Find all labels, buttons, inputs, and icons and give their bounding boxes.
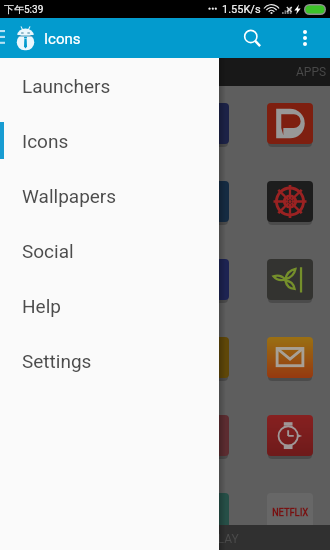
button[interactable]: More options bbox=[291, 18, 319, 58]
staticText: Help bbox=[22, 295, 61, 317]
button[interactable]: Social bbox=[0, 223, 219, 278]
staticText: Icons bbox=[22, 130, 69, 152]
button[interactable]: Open navigation drawer bbox=[0, 18, 18, 58]
staticText: Icons bbox=[44, 30, 81, 48]
button[interactable]: Icons bbox=[0, 113, 219, 168]
button[interactable]: Launchers bbox=[0, 58, 219, 113]
staticText: NETFLIX bbox=[272, 506, 309, 519]
staticText: Launchers bbox=[22, 75, 111, 97]
button[interactable]: Help bbox=[0, 278, 219, 333]
staticText: Wallpapers bbox=[22, 185, 117, 207]
staticText: ··· bbox=[208, 2, 218, 16]
staticText: Social bbox=[22, 240, 74, 262]
button[interactable]: Settings bbox=[0, 333, 219, 388]
staticText: 1.55K/s bbox=[222, 3, 261, 16]
staticText: APPS bbox=[296, 65, 327, 79]
staticText: PLAY bbox=[210, 532, 239, 546]
button[interactable]: Search bbox=[236, 18, 268, 58]
button[interactable]: Wallpapers bbox=[0, 168, 219, 223]
staticText: Settings bbox=[22, 350, 92, 372]
staticText: 下午5:39 bbox=[4, 3, 44, 16]
